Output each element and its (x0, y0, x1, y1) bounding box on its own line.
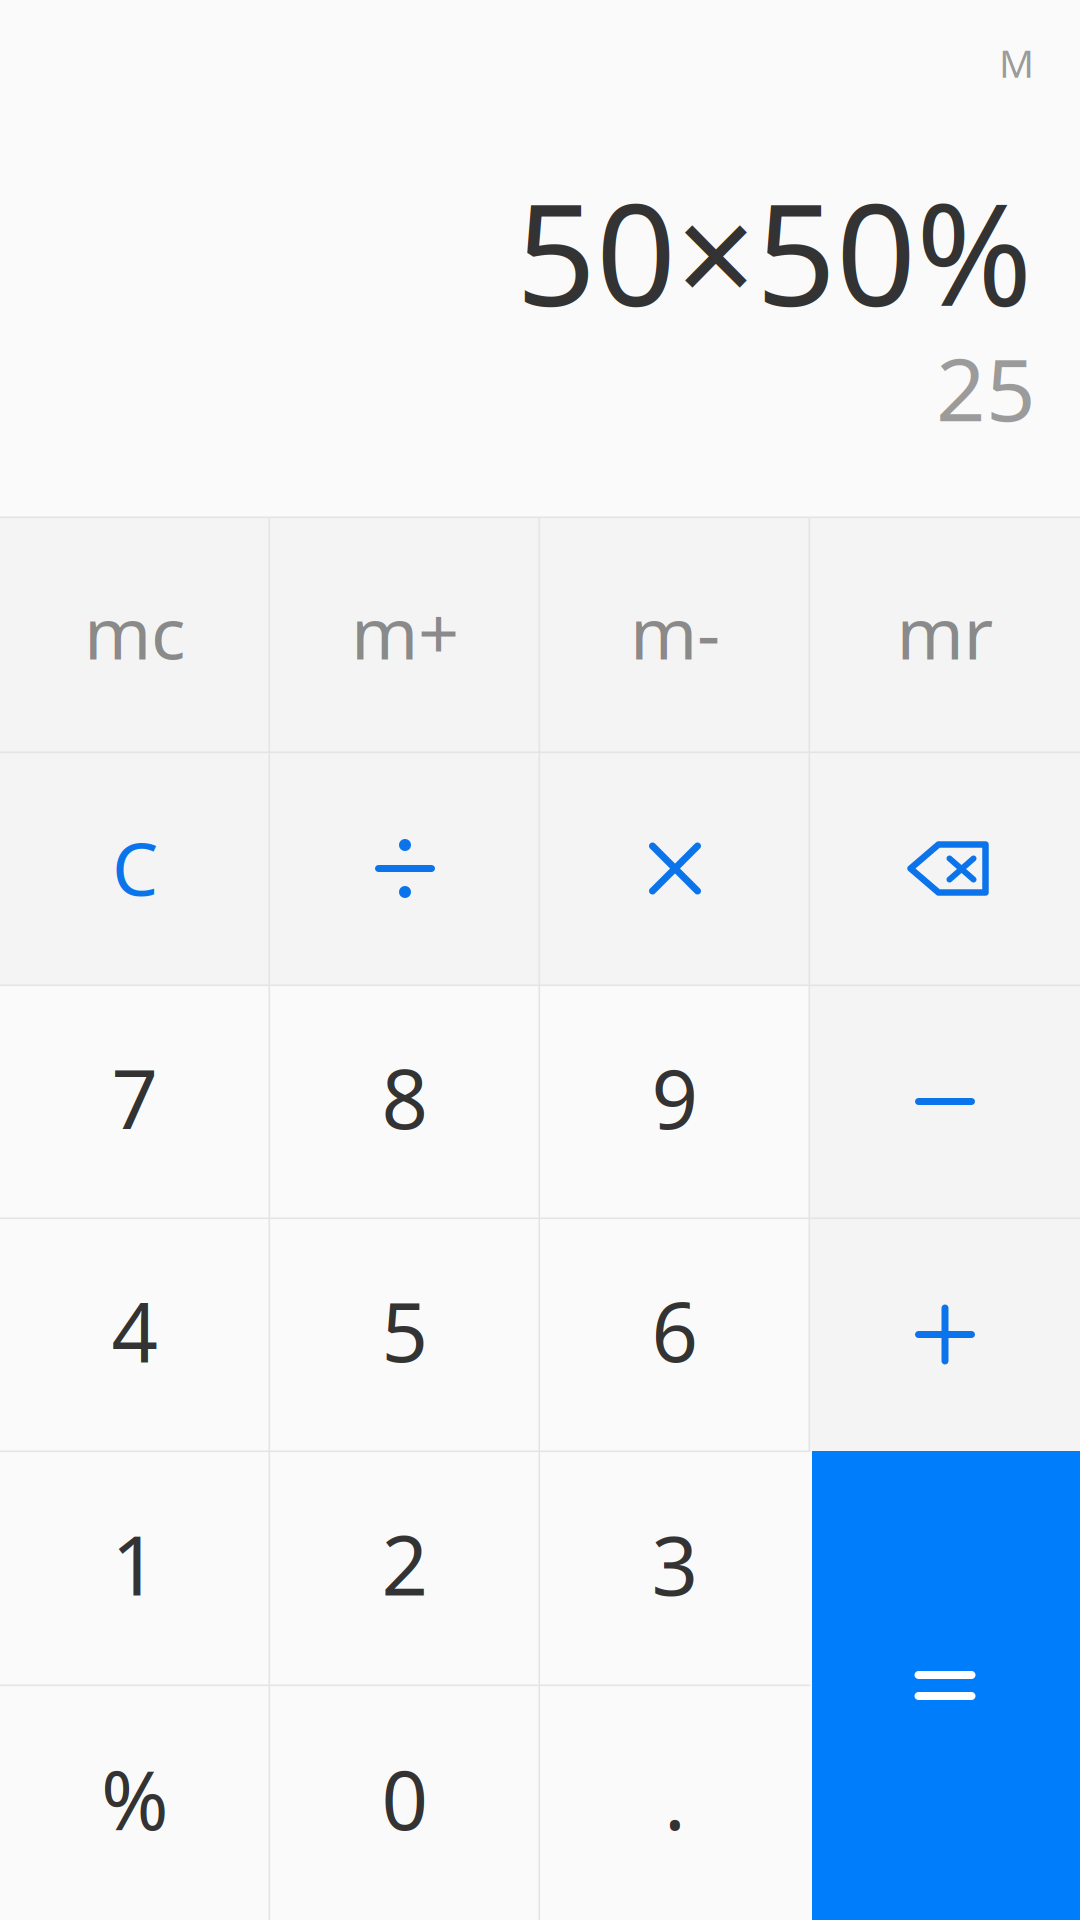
staticText: m+ (351, 584, 459, 679)
button[interactable]: . (540, 1685, 810, 1920)
button[interactable]: C (0, 752, 270, 985)
button[interactable]: 5 (270, 1218, 540, 1451)
staticText: 2 (381, 1510, 428, 1618)
staticText: 1 (111, 1510, 158, 1618)
button[interactable]: 2 (270, 1451, 540, 1685)
staticText: C (112, 819, 158, 916)
staticText: 4 (111, 1276, 158, 1384)
staticText: % (101, 1744, 169, 1852)
button[interactable]: 3 (540, 1451, 810, 1685)
button[interactable]: 1 (0, 1451, 270, 1685)
staticText: 5 (381, 1276, 428, 1384)
staticText: 0 (381, 1744, 428, 1852)
button[interactable]: Multiply (540, 752, 810, 985)
button[interactable]: Add (810, 1218, 1080, 1451)
button[interactable]: m- (540, 517, 810, 752)
button[interactable]: 7 (0, 985, 270, 1218)
staticText: 8 (381, 1043, 428, 1151)
staticText: m- (630, 584, 720, 679)
staticText: 6 (651, 1276, 698, 1384)
button[interactable]: 4 (0, 1218, 270, 1451)
button[interactable]: 9 (540, 985, 810, 1218)
staticText: . (664, 1744, 686, 1852)
staticText: mr (896, 584, 993, 679)
staticText: 9 (651, 1043, 698, 1151)
button[interactable]: 8 (270, 985, 540, 1218)
button[interactable]: Delete (810, 752, 1080, 985)
staticText: 7 (111, 1043, 158, 1151)
button[interactable]: % (0, 1685, 270, 1920)
staticText: mc (84, 584, 186, 679)
button[interactable]: 6 (540, 1218, 810, 1451)
button[interactable]: m+ (270, 517, 540, 752)
staticText: M (999, 37, 1034, 88)
button[interactable]: mc (0, 517, 270, 752)
button[interactable]: Subtract (810, 985, 1080, 1218)
button[interactable]: Equals (812, 1451, 1080, 1920)
button[interactable]: mr (810, 517, 1080, 752)
staticText: 50×50% (516, 159, 1032, 345)
button[interactable]: Divide (270, 752, 540, 985)
button[interactable]: 0 (270, 1685, 540, 1920)
staticText: 25 (936, 330, 1036, 445)
staticText: 3 (651, 1510, 698, 1618)
